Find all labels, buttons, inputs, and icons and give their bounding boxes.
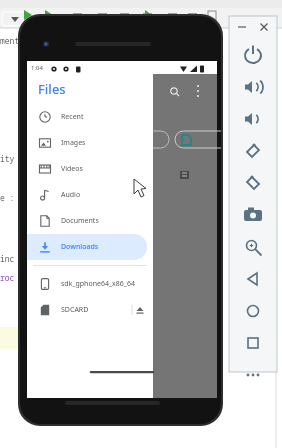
- button[interactable]: Files: [27, 74, 153, 104]
- staticText: roc: [0, 272, 15, 283]
- button[interactable]: Back: [242, 268, 264, 290]
- button[interactable]: Zoom: [242, 236, 264, 258]
- staticText: Documents: [61, 216, 99, 226]
- staticText: Audio: [61, 190, 81, 200]
- button[interactable]: Rotate right: [242, 172, 264, 194]
- staticText: Files: [38, 80, 66, 98]
- button[interactable]: Documents: [27, 208, 147, 234]
- button[interactable]: More: [242, 364, 264, 386]
- staticText: ment: [0, 35, 20, 46]
- button[interactable]: Volume up: [242, 76, 264, 98]
- button[interactable]: Overview: [242, 332, 264, 354]
- staticText: e :: [0, 192, 15, 203]
- button[interactable]: Eject SD card: [133, 303, 147, 317]
- staticText: inc: [0, 253, 15, 264]
- button[interactable]: Videos: [27, 156, 147, 182]
- button[interactable]: sdk_gphone64_x86_64: [27, 271, 147, 297]
- button[interactable]: Rotate left: [242, 140, 264, 162]
- button[interactable]: Audio: [27, 182, 147, 208]
- button[interactable]: Recent: [27, 104, 147, 130]
- button[interactable]: Images: [27, 130, 147, 156]
- staticText: 1:04: [31, 64, 43, 72]
- button[interactable]: Volume down: [242, 108, 264, 130]
- button[interactable]: SDCARD: [27, 297, 147, 323]
- staticText: Downloads: [61, 242, 99, 252]
- staticText: p: [218, 37, 223, 48]
- staticText: ity: [0, 153, 15, 164]
- staticText: Images: [61, 138, 86, 148]
- button[interactable]: Close: [257, 20, 271, 34]
- button[interactable]: Take screenshot: [242, 204, 264, 226]
- button[interactable]: Home: [242, 300, 264, 322]
- button[interactable]: Power: [242, 44, 264, 66]
- staticText: Videos: [61, 164, 83, 174]
- button[interactable]: Downloads: [27, 234, 147, 260]
- staticText: sdk_gphone64_x86_64: [61, 279, 135, 289]
- button[interactable]: Minimize: [235, 20, 249, 34]
- staticText: SDCARD: [61, 305, 89, 315]
- staticText: Recent: [61, 112, 84, 122]
